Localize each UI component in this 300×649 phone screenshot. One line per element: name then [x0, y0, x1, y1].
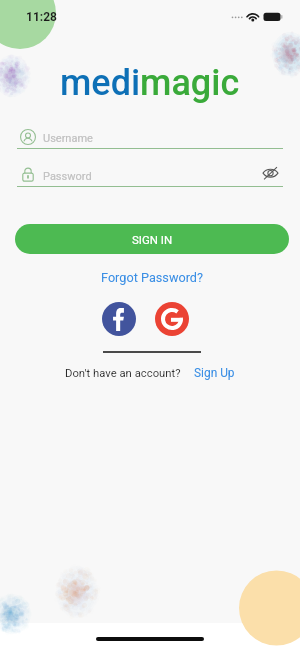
- staticText: Don't have an account?: [65, 367, 181, 380]
- button[interactable]: Show password: [260, 163, 281, 184]
- staticText: Username: [43, 132, 93, 145]
- button[interactable]: SIGN IN: [15, 224, 289, 254]
- button[interactable]: Username: [0, 126, 300, 147]
- button[interactable]: Forgot Password?: [95, 267, 209, 288]
- staticText: medimagic: [60, 62, 240, 104]
- button[interactable]: Sign in with Facebook: [102, 302, 136, 336]
- button[interactable]: Password: [0, 163, 300, 184]
- staticText: Password: [43, 170, 92, 183]
- staticText: 11:28: [26, 10, 57, 24]
- button[interactable]: Sign Up: [194, 366, 235, 380]
- staticText: SIGN IN: [132, 233, 173, 246]
- button[interactable]: Sign in with Google: [155, 302, 189, 336]
